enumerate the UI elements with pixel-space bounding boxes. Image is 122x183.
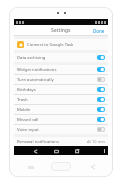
button[interactable]: Renewal notifications [14, 137, 108, 146]
button[interactable]: Voice input [14, 125, 108, 134]
button[interactable]: Birthdays [14, 85, 108, 94]
button[interactable]: Back [89, 163, 96, 170]
staticText: At 10 min [87, 139, 105, 144]
button[interactable]: Toggle on [97, 97, 105, 102]
button[interactable]: Turn automatically [14, 75, 108, 84]
staticText: Data archiving [17, 55, 97, 61]
staticText: Missed call [17, 117, 97, 123]
button[interactable]: Toggle off [97, 127, 105, 132]
button[interactable]: Home [52, 147, 60, 155]
button[interactable]: Recent apps [73, 147, 81, 155]
staticText: Done [93, 28, 105, 34]
button[interactable]: Home [51, 162, 71, 171]
button[interactable]: Missed call [14, 115, 108, 124]
button[interactable]: Back [31, 147, 39, 155]
button[interactable]: Toggle on [97, 117, 105, 122]
button[interactable]: Toggle on [97, 87, 105, 92]
button[interactable]: More options [102, 147, 106, 154]
staticText: Voice input [17, 127, 97, 133]
staticText: Trash [17, 97, 97, 103]
staticText: Mobile [17, 107, 97, 113]
button[interactable]: Toggle on [97, 67, 105, 72]
staticText: Turn automatically [17, 77, 97, 83]
button[interactable]: Widget notifications [14, 65, 108, 74]
button[interactable]: Toggle off [97, 77, 105, 82]
staticText: Settings [51, 27, 71, 34]
button[interactable]: Trash [14, 95, 108, 104]
button[interactable]: Toggle on [97, 107, 105, 112]
button[interactable]: Connect to Google Task [14, 39, 108, 50]
button[interactable]: Recents [27, 165, 34, 169]
button[interactable]: Mobile [14, 105, 108, 114]
staticText: Birthdays [17, 87, 97, 93]
staticText: Widget notifications [17, 67, 97, 73]
button[interactable]: Toggle on [97, 55, 105, 60]
staticText: Renewal notifications [17, 139, 87, 145]
staticText: Connect to Google Task [27, 42, 74, 48]
button[interactable]: Data archiving [14, 53, 108, 62]
button[interactable]: Done [93, 28, 105, 34]
